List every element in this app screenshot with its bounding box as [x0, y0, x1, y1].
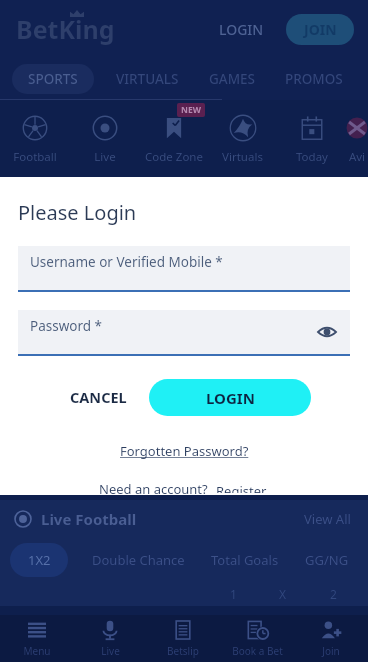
staticText: Total Goals: [211, 551, 279, 569]
button[interactable]: View All: [301, 507, 354, 531]
staticText: PROMOS: [285, 70, 343, 88]
staticText: Need an account?: [99, 480, 208, 495]
staticText: Live: [94, 149, 116, 165]
staticText: Live: [101, 644, 120, 658]
staticText: Aviator: [346, 149, 368, 165]
button[interactable]: VIRTUALS: [110, 64, 185, 94]
staticText: View All: [304, 510, 351, 528]
button[interactable]: Football: [0, 100, 70, 177]
staticText: LOGIN: [206, 388, 255, 408]
button[interactable]: Register: [214, 480, 269, 495]
button[interactable]: Join: [294, 615, 368, 662]
staticText: VIRTUALS: [116, 70, 179, 88]
button[interactable]: Forgotten Password?: [116, 438, 253, 464]
staticText: 1: [230, 586, 237, 602]
staticText: Join: [322, 644, 340, 658]
button[interactable]: Username or Verified Mobile *: [18, 246, 350, 292]
staticText: Football: [13, 149, 57, 165]
button[interactable]: LOGIN: [211, 14, 272, 45]
staticText: Book a Bet: [232, 644, 283, 658]
staticText: LOGIN: [219, 20, 264, 39]
staticText: GAMES: [209, 70, 255, 88]
button[interactable]: Betslip: [146, 615, 220, 662]
button[interactable]: Live: [70, 100, 139, 177]
staticText: SPORTS: [28, 70, 78, 88]
button[interactable]: Book a Bet: [220, 615, 294, 662]
button[interactable]: JOIN: [286, 14, 354, 45]
button[interactable]: CANCEL: [58, 378, 139, 416]
staticText: Virtuals: [222, 149, 263, 165]
staticText: Double Chance: [92, 551, 185, 569]
button[interactable]: Today: [277, 100, 346, 177]
button[interactable]: Code Zone: [139, 100, 208, 177]
staticText: 1X2: [28, 551, 51, 569]
button[interactable]: LOGIN: [149, 379, 311, 416]
staticText: Forgotten Password?: [120, 442, 249, 460]
staticText: CANCEL: [70, 387, 127, 407]
button[interactable]: 1X2: [10, 543, 68, 577]
staticText: Betslip: [167, 644, 199, 658]
button[interactable]: Live: [73, 615, 146, 662]
staticText: X: [279, 586, 287, 602]
button[interactable]: Password *: [18, 310, 350, 356]
staticText: Username or Verified Mobile *: [30, 253, 223, 271]
staticText: Register: [216, 482, 267, 493]
staticText: Live Football: [41, 509, 137, 529]
button[interactable]: Double Chance: [88, 547, 189, 573]
staticText: Please Login: [18, 199, 137, 226]
staticText: Password *: [30, 317, 103, 335]
staticText: NEW: [181, 104, 201, 116]
staticText: Code Zone: [145, 149, 203, 165]
staticText: BetKing: [16, 12, 115, 46]
button[interactable]: GG/NG: [301, 547, 353, 573]
button[interactable]: Aviator: [346, 100, 368, 177]
button[interactable]: PROMOS: [279, 64, 349, 94]
button[interactable]: Total Goals: [207, 547, 283, 573]
staticText: Today: [296, 149, 328, 165]
button[interactable]: Menu: [0, 615, 73, 662]
button[interactable]: GAMES: [203, 64, 261, 94]
button[interactable]: Virtuals: [208, 100, 277, 177]
button[interactable]: Show password: [314, 319, 340, 345]
staticText: Menu: [23, 644, 51, 658]
staticText: 2: [330, 586, 337, 602]
staticText: GG/NG: [305, 551, 349, 569]
button[interactable]: SPORTS: [12, 64, 94, 94]
staticText: JOIN: [304, 20, 337, 39]
